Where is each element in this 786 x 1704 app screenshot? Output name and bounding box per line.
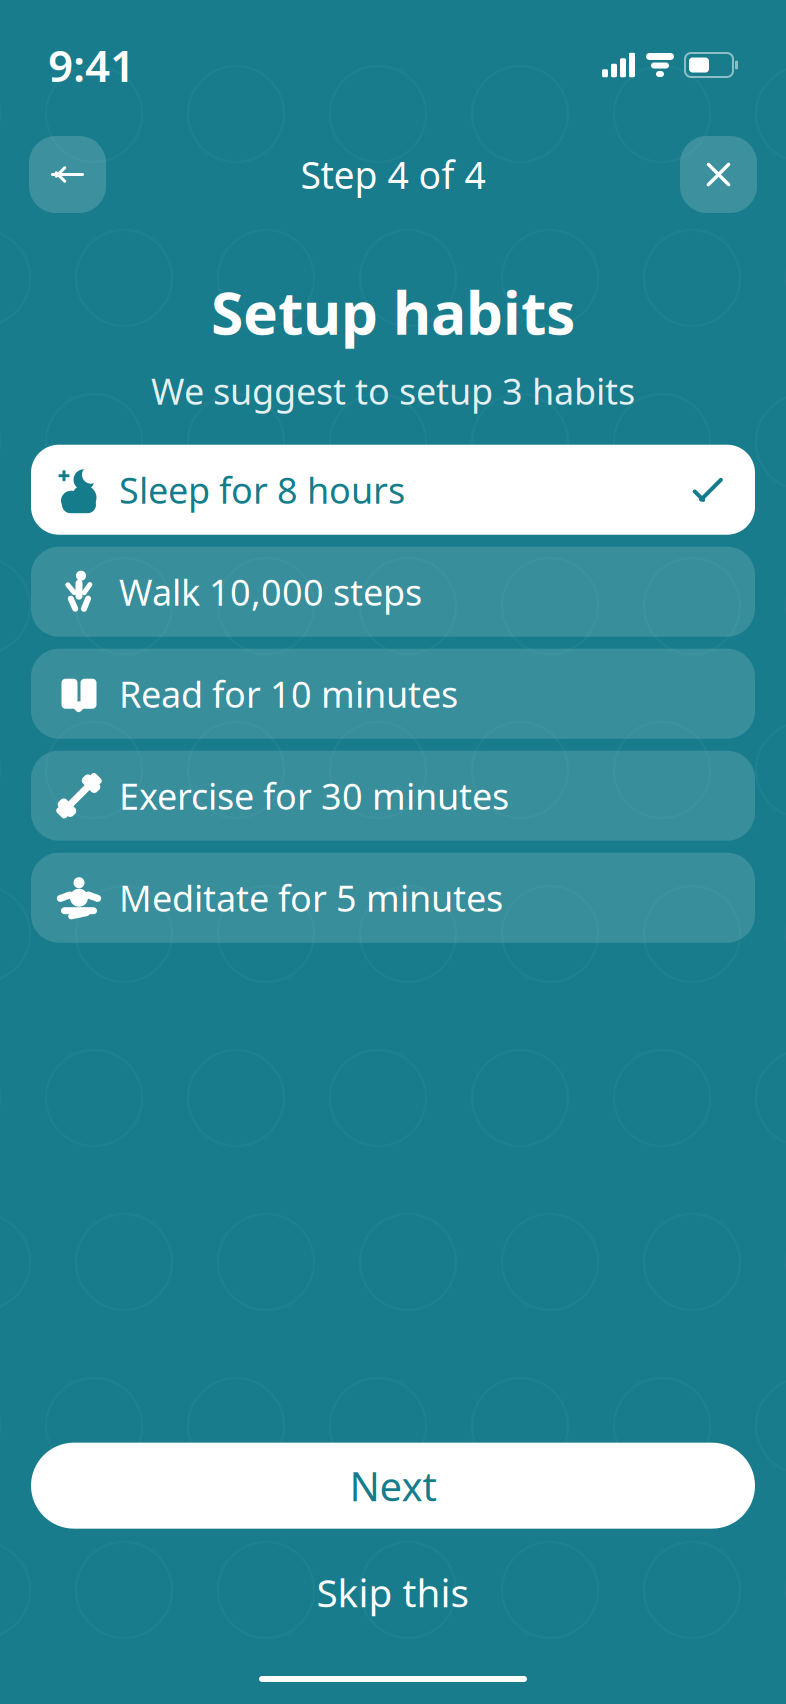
staticText: Walk 10,000 steps bbox=[119, 568, 422, 616]
button[interactable]: Exercise for 30 minutes bbox=[31, 751, 755, 841]
staticText: Step 4 of 4 bbox=[300, 150, 485, 199]
button[interactable]: Back bbox=[29, 136, 106, 213]
button[interactable]: Meditate for 5 minutes bbox=[31, 853, 755, 943]
button[interactable]: Next bbox=[31, 1443, 755, 1529]
staticText: Next bbox=[349, 1459, 436, 1512]
button[interactable]: Sleep for 8 hours bbox=[31, 445, 755, 535]
staticText: Exercise for 30 minutes bbox=[119, 772, 509, 820]
staticText: Read for 10 minutes bbox=[119, 670, 458, 718]
staticText: Meditate for 5 minutes bbox=[119, 874, 503, 922]
button[interactable]: Read for 10 minutes bbox=[31, 649, 755, 739]
button[interactable]: Walk 10,000 steps bbox=[31, 547, 755, 637]
staticText: We suggest to setup 3 habits bbox=[151, 367, 635, 415]
button[interactable]: Close bbox=[680, 136, 757, 213]
button[interactable]: Skip this bbox=[276, 1551, 509, 1634]
staticText: Setup habits bbox=[211, 273, 575, 351]
staticText: Sleep for 8 hours bbox=[119, 466, 405, 514]
staticText: Skip this bbox=[316, 1567, 469, 1618]
staticText: 9:41 bbox=[48, 36, 135, 94]
